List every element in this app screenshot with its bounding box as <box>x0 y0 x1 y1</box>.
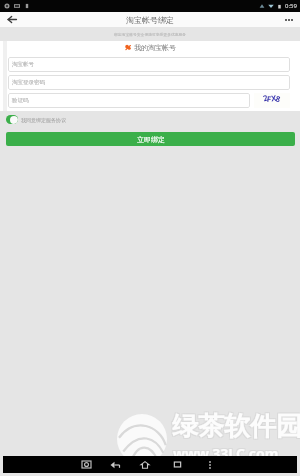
button[interactable]: Agree to binding terms <box>6 115 18 124</box>
button[interactable]: Back <box>0 12 24 27</box>
staticText: 2 <box>262 91 269 103</box>
staticText: 验证码 <box>12 97 29 104</box>
button[interactable]: Screenshot <box>75 456 97 473</box>
staticText: 绿茶软件园 <box>172 410 300 443</box>
staticText: 8 <box>274 92 282 104</box>
button[interactable]: Menu <box>203 456 217 473</box>
staticText: www.33LC.com <box>172 445 278 464</box>
staticText: 淘宝登录密码 <box>12 79 45 86</box>
staticText: X <box>270 92 278 103</box>
staticText: 绿茶软件园 <box>171 409 300 442</box>
staticText: 0:59 <box>285 2 297 10</box>
staticText: 立即绑定 <box>137 135 165 144</box>
staticText: 绿茶软件园 <box>173 409 300 442</box>
button[interactable]: Recent apps <box>166 456 188 473</box>
staticText: 绿茶软件园 <box>173 411 300 444</box>
button[interactable]: 淘宝帐号 <box>8 57 290 72</box>
button[interactable]: Refresh captcha <box>254 93 290 108</box>
button[interactable]: Back <box>104 456 126 473</box>
staticText: 绑定淘宝帐号安全便捷可享受更多优惠服务 <box>114 32 187 37</box>
staticText: 我同意绑定服务协议 <box>21 117 66 123</box>
staticText: 淘宝帐号绑定 <box>126 15 174 25</box>
staticText: www.33LC.com <box>174 443 280 462</box>
button[interactable]: Home <box>134 456 156 473</box>
staticText: www.33LC.com <box>174 445 280 464</box>
button[interactable]: 立即绑定 <box>6 132 295 146</box>
button[interactable]: 淘宝登录密码 <box>8 75 290 90</box>
staticText: www.33LC.com <box>172 443 278 462</box>
staticText: 我的淘宝帐号 <box>134 43 176 52</box>
staticText: 绿茶软件园 <box>171 411 300 444</box>
button[interactable]: 验证码 <box>8 93 250 108</box>
staticText: F <box>266 93 272 104</box>
staticText: 淘宝帐号 <box>12 61 34 68</box>
button[interactable]: More options <box>278 12 300 27</box>
staticText: www.33LC.com <box>173 444 279 463</box>
